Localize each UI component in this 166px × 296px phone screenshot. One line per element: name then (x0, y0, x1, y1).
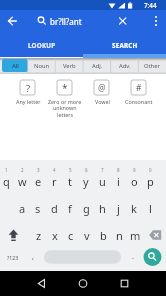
staticText: 5 (69, 167, 72, 173)
staticText: t (68, 174, 72, 189)
staticText: v (84, 228, 90, 243)
staticText: , (32, 252, 34, 262)
staticText: s (35, 201, 41, 216)
staticText: br?ll?ant (50, 16, 82, 27)
staticText: u (99, 174, 106, 189)
staticText: # (136, 82, 142, 94)
staticText: Any letter (16, 98, 41, 105)
staticText: . (132, 252, 134, 262)
staticText: 6 (85, 167, 88, 173)
staticText: g (83, 201, 90, 216)
staticText: Adj. (92, 62, 103, 70)
staticText: @ (98, 82, 106, 94)
staticText: Other (144, 62, 160, 70)
staticText: y (83, 174, 89, 189)
staticText: 3 (37, 167, 40, 173)
staticText: p (147, 174, 154, 189)
staticText: unknown (53, 104, 77, 111)
staticText: w (18, 174, 27, 189)
staticText: h (99, 201, 106, 216)
staticText: x (52, 228, 58, 243)
staticText: l (149, 201, 152, 216)
staticText: 4 (53, 167, 56, 173)
staticText: i (117, 174, 120, 189)
staticText: Adv. (119, 62, 131, 70)
staticText: e (35, 174, 42, 189)
staticText: o (131, 174, 138, 189)
staticText: ?123 (7, 254, 19, 261)
staticText: LOOKUP (28, 41, 56, 50)
staticText: f (68, 201, 72, 216)
staticText: j (117, 201, 120, 216)
staticText: ? (26, 82, 31, 95)
staticText: r (52, 174, 57, 189)
staticText: Verb (63, 62, 76, 70)
staticText: b (100, 228, 107, 243)
staticText: z (36, 228, 42, 243)
staticText: Vowel (95, 98, 110, 105)
staticText: m (130, 228, 141, 243)
staticText: Noun (34, 62, 50, 70)
staticText: k (131, 201, 137, 216)
staticText: a (19, 201, 26, 216)
staticText: * (62, 81, 68, 95)
staticText: 7:44 (144, 1, 157, 10)
staticText: 2 (21, 167, 24, 173)
staticText: All (12, 62, 19, 70)
staticText: 7 (101, 167, 104, 173)
staticText: Zero or more (48, 98, 82, 105)
staticText: letters (57, 111, 74, 118)
staticText: SEARCH (112, 41, 138, 50)
staticText: 1 (5, 167, 8, 173)
staticText: q (3, 174, 10, 189)
staticText: n (116, 228, 123, 243)
staticText: 8 (117, 167, 120, 173)
staticText: 0 (149, 167, 152, 173)
staticText: 9 (133, 167, 136, 173)
staticText: c (68, 228, 74, 243)
staticText: Consonant (125, 98, 153, 105)
staticText: d (51, 201, 58, 216)
